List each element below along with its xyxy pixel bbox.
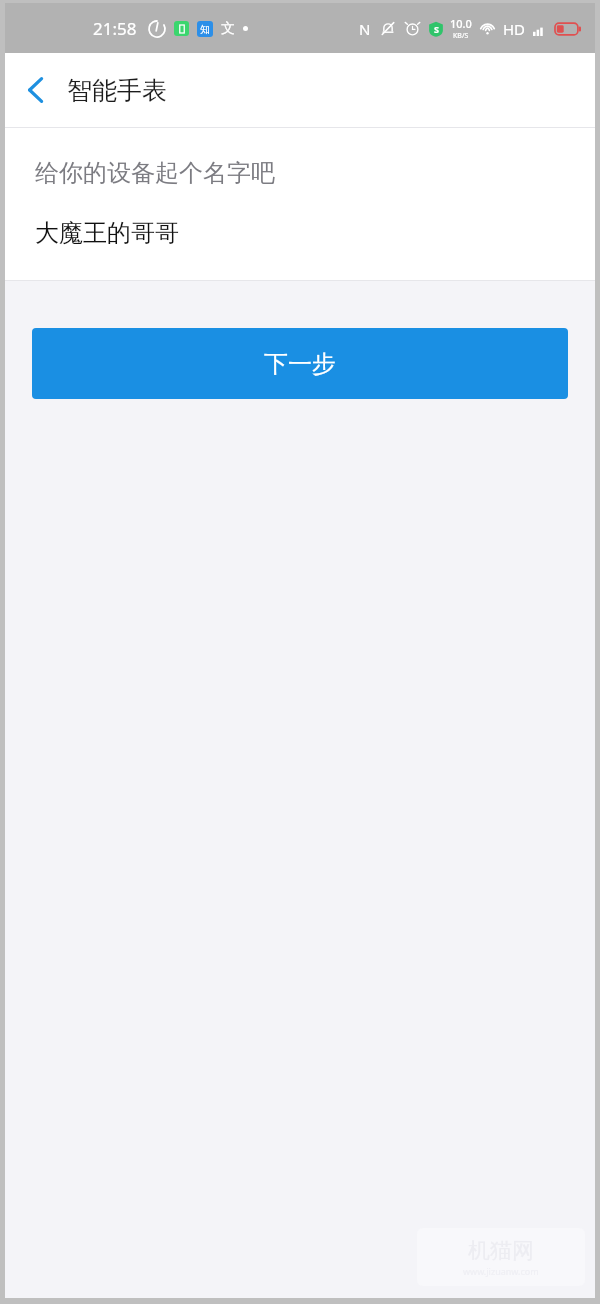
button[interactable]: 下一步	[32, 328, 568, 399]
staticText: 下一步	[264, 349, 336, 379]
staticText: 10.0	[450, 16, 472, 31]
button[interactable]: 给你的设备起个名字吧	[5, 128, 595, 280]
staticText: 文	[221, 20, 235, 38]
staticText: HD	[503, 19, 526, 39]
button[interactable]: 返回	[5, 53, 67, 127]
staticText: KB/S	[453, 31, 469, 41]
staticText: 大魔王的哥哥	[35, 218, 179, 248]
staticText: 智能手表	[67, 75, 167, 106]
staticText: 21:58	[93, 17, 137, 40]
staticText: www.jizuanw.com	[463, 1265, 539, 1277]
staticText: N	[359, 19, 371, 39]
staticText: 知	[200, 23, 210, 36]
staticText: 机猫网	[468, 1237, 534, 1265]
staticText: 给你的设备起个名字吧	[35, 158, 275, 188]
staticText: S	[434, 23, 439, 35]
